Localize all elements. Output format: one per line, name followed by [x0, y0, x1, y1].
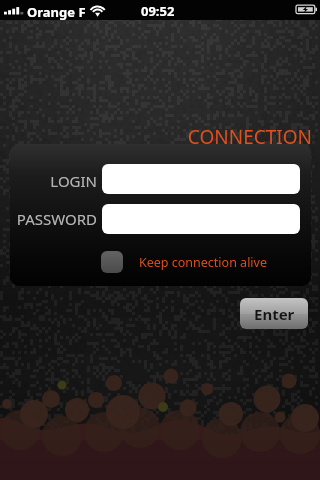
staticText: Orange F [27, 3, 86, 21]
button[interactable]: Password field [102, 204, 300, 234]
staticText: Enter [254, 304, 295, 324]
button[interactable]: Keep connection alive [101, 251, 267, 273]
staticText: CONNECTION [150, 124, 312, 150]
staticText: 09:52 [141, 2, 175, 20]
staticText: Keep connection alive [139, 254, 267, 271]
button[interactable]: Enter [240, 298, 308, 329]
staticText: LOGIN [10, 171, 97, 191]
button[interactable]: Login field [102, 164, 300, 194]
staticText: PASSWORD [10, 209, 97, 229]
